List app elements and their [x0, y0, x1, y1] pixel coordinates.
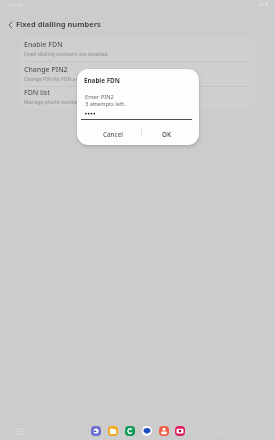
staticText: Change PIN2 — [24, 65, 68, 75]
staticText: OK — [162, 130, 172, 139]
button[interactable]: Change PIN2 — [19, 62, 256, 87]
button[interactable]: OK — [141, 123, 199, 145]
button[interactable]: Navigate up — [1, 17, 15, 31]
staticText: Enable FDN — [24, 40, 63, 50]
button[interactable]: Apps — [12, 423, 28, 439]
button[interactable]: My Files — [108, 426, 118, 436]
button[interactable]: Phone — [125, 426, 135, 436]
staticText: Fixed dialling numbers — [16, 19, 101, 29]
button[interactable]: Enable FDN — [19, 37, 256, 62]
staticText: Cancel — [103, 130, 123, 139]
button[interactable]: Contacts — [159, 426, 169, 436]
staticText: Change PIN for FDN and more. — [24, 76, 97, 83]
button[interactable]: Cancel — [77, 123, 141, 145]
staticText: Fixed dialling numbers are disabled. — [24, 51, 109, 58]
staticText: FDN list — [24, 88, 50, 98]
button[interactable]: FDN list — [19, 87, 256, 109]
staticText: Manage phone numbers for FDN. — [24, 99, 103, 106]
button[interactable]: Camera — [175, 426, 185, 436]
staticText: Enable FDN — [84, 76, 120, 85]
staticText: 10:00 — [8, 1, 24, 9]
staticText: Enter PIN2 3 attempts left. — [85, 93, 126, 108]
button[interactable]: Samsung Internet — [91, 426, 101, 436]
button[interactable]: Messages — [142, 426, 152, 436]
